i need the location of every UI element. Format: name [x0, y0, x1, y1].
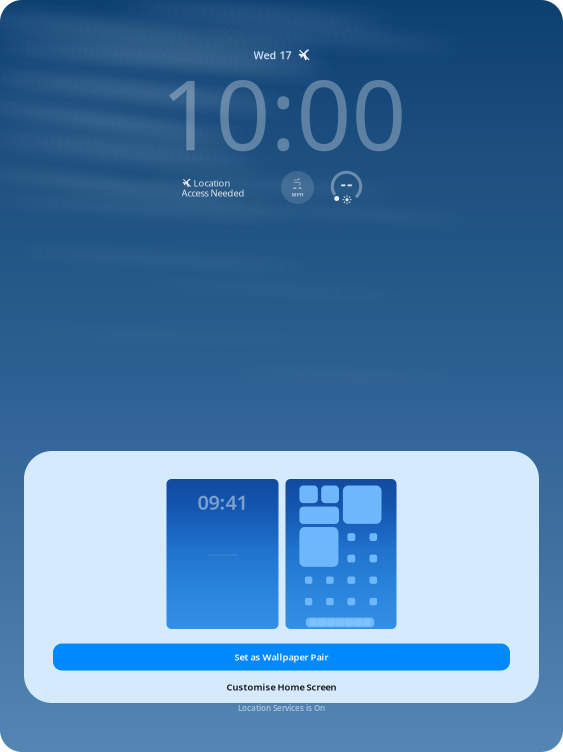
staticText: Location Services is On	[238, 703, 325, 713]
staticText: 10:00	[160, 49, 406, 177]
staticText: Access Needed	[181, 187, 244, 199]
staticText: Location	[193, 177, 230, 189]
staticText: 09:41	[197, 489, 247, 515]
staticText: MPH	[291, 191, 303, 198]
button[interactable]: Set as Wallpaper Pair	[53, 643, 510, 670]
staticText: Wed 17	[253, 48, 291, 62]
staticText: Customise Home Screen	[226, 681, 336, 693]
button[interactable]: Customise Home Screen	[53, 675, 510, 699]
staticText: Set as Wallpaper Pair	[234, 651, 328, 663]
